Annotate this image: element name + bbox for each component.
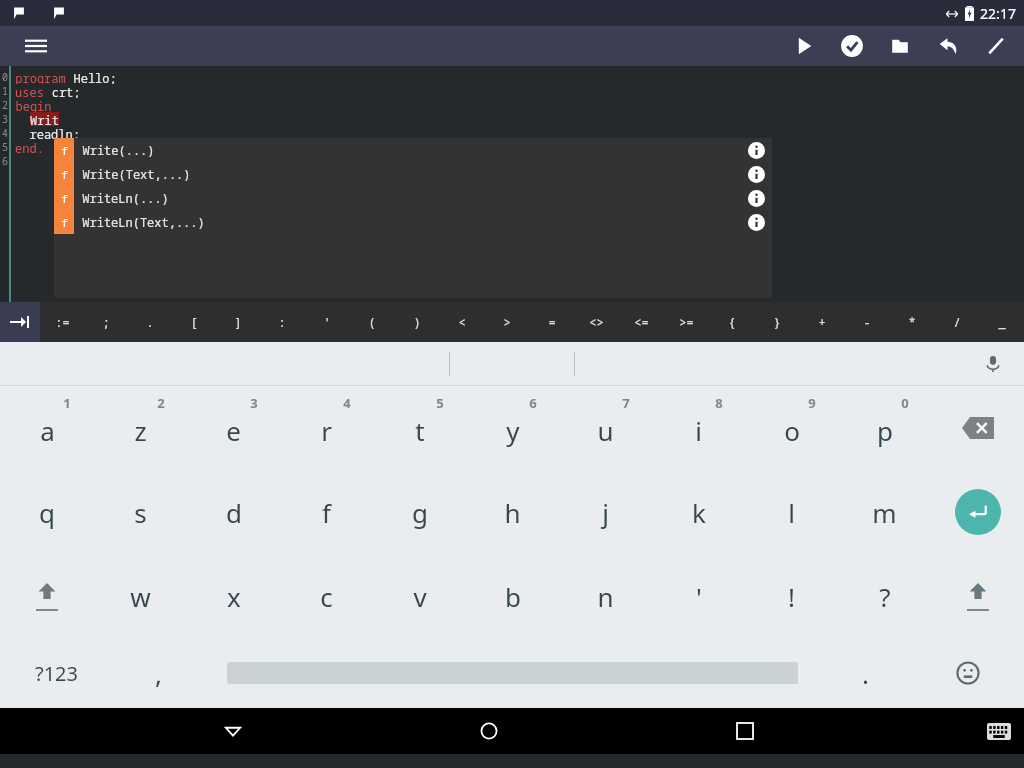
button[interactable]: Space (205, 638, 819, 708)
button[interactable]: - (844, 302, 889, 342)
button[interactable]: ' (304, 302, 349, 342)
staticText: 0 (901, 394, 909, 412)
button[interactable]: Menu (14, 26, 58, 66)
button[interactable]: 1 (0, 386, 94, 470)
button[interactable]: . (128, 302, 172, 342)
staticText: crt; (44, 84, 81, 98)
button[interactable]: { (709, 302, 754, 342)
staticText: ! (788, 579, 795, 614)
staticText: WriteLn(Text,...) (82, 214, 205, 230)
staticText: i (695, 413, 702, 448)
button[interactable]: Home (466, 708, 512, 754)
staticText: g (412, 495, 428, 530)
button[interactable]: x (187, 554, 280, 638)
button[interactable]: : (260, 302, 304, 342)
button[interactable]: > (484, 302, 529, 342)
button[interactable]: d (187, 470, 280, 554)
staticText: j (602, 495, 609, 530)
button[interactable]: Info (744, 186, 768, 210)
staticText: c (320, 579, 333, 614)
staticText: _ (998, 314, 1006, 330)
button[interactable]: [ (172, 302, 216, 342)
button[interactable]: = (529, 302, 574, 342)
button[interactable]: <> (574, 302, 619, 342)
button[interactable]: Undo (924, 26, 972, 66)
button[interactable]: Info (744, 138, 768, 162)
button[interactable]: _ (979, 302, 1024, 342)
staticText: ] (234, 314, 242, 330)
button[interactable]: f (280, 470, 373, 554)
button[interactable]: Shift (931, 554, 1024, 638)
button[interactable]: Shift (0, 554, 94, 638)
button[interactable]: v (373, 554, 466, 638)
button[interactable]: Run (780, 26, 828, 66)
button[interactable]: g (373, 470, 466, 554)
button[interactable]: ' (652, 554, 745, 638)
button[interactable]: c (280, 554, 373, 638)
button[interactable]: . (819, 638, 912, 708)
staticText: . (862, 656, 869, 691)
button[interactable]: b (466, 554, 559, 638)
staticText: t (415, 413, 425, 448)
button[interactable]: Info (744, 210, 768, 234)
staticText: uses (15, 84, 44, 98)
button[interactable]: 7 (559, 386, 652, 470)
staticText: f (61, 215, 68, 230)
button[interactable]: f (54, 186, 772, 210)
button[interactable]: Enter (931, 470, 1024, 554)
button[interactable]: >= (664, 302, 709, 342)
button[interactable]: w (94, 554, 187, 638)
button[interactable]: l (745, 470, 838, 554)
button[interactable]: f (54, 162, 772, 186)
button[interactable]: ( (349, 302, 394, 342)
button[interactable]: Tab (0, 302, 40, 342)
button[interactable]: 2 (94, 386, 187, 470)
button[interactable]: * (889, 302, 934, 342)
button[interactable]: s (94, 470, 187, 554)
button[interactable]: } (754, 302, 799, 342)
button[interactable]: 8 (652, 386, 745, 470)
button[interactable]: := (40, 302, 84, 342)
button[interactable]: h (466, 470, 559, 554)
button[interactable]: Info (744, 162, 768, 186)
button[interactable]: j (559, 470, 652, 554)
staticText: 3 (250, 394, 258, 412)
staticText: Hello; (66, 70, 117, 84)
button[interactable]: Edit (972, 26, 1020, 66)
button[interactable]: , (112, 638, 205, 708)
staticText: f (61, 191, 68, 206)
button[interactable]: ) (394, 302, 439, 342)
button[interactable]: m (838, 470, 931, 554)
button[interactable]: + (799, 302, 844, 342)
staticText: < (458, 314, 466, 330)
button[interactable]: 6 (466, 386, 559, 470)
button[interactable]: Emoji (912, 638, 1024, 708)
button[interactable]: f (54, 210, 772, 234)
button[interactable]: ?123 (0, 638, 112, 708)
button[interactable]: Backspace (931, 386, 1024, 470)
button[interactable]: Check (828, 26, 876, 66)
button[interactable]: Open file (876, 26, 924, 66)
button[interactable]: ] (216, 302, 260, 342)
button[interactable]: q (0, 470, 94, 554)
button[interactable]: ; (84, 302, 128, 342)
staticText: ; (102, 314, 110, 330)
button[interactable]: <= (619, 302, 664, 342)
button[interactable]: ? (838, 554, 931, 638)
button[interactable]: 3 (187, 386, 280, 470)
button[interactable]: < (439, 302, 484, 342)
button[interactable]: 5 (373, 386, 466, 470)
button[interactable]: f (54, 138, 772, 162)
staticText: 4 (2, 126, 8, 140)
button[interactable]: Show keyboard (978, 708, 1020, 754)
button[interactable]: Voice input (976, 347, 1010, 381)
button[interactable]: k (652, 470, 745, 554)
button[interactable]: Recent apps (722, 708, 768, 754)
button[interactable]: 0 (838, 386, 931, 470)
button[interactable]: / (934, 302, 979, 342)
button[interactable]: Back (210, 708, 256, 754)
button[interactable]: 4 (280, 386, 373, 470)
button[interactable]: 9 (745, 386, 838, 470)
button[interactable]: ! (745, 554, 838, 638)
button[interactable]: n (559, 554, 652, 638)
